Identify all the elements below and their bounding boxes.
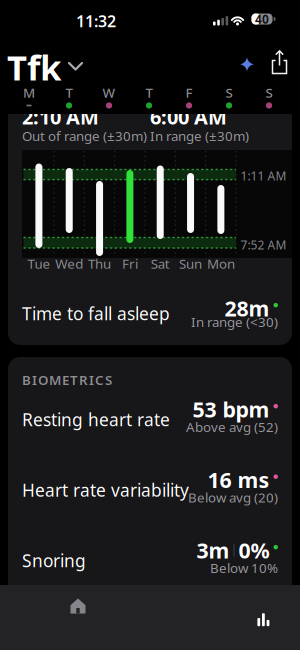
button[interactable]: Tfk	[7, 44, 84, 90]
staticText: Below 10%	[210, 559, 278, 577]
staticText: 6:00 AM	[150, 103, 227, 130]
staticText: 28m	[224, 294, 269, 322]
button[interactable]: Share	[270, 48, 289, 75]
staticText: 40	[255, 11, 269, 27]
staticText: S	[265, 84, 272, 101]
button[interactable]: Resting heart rate	[8, 393, 292, 438]
staticText: 16 ms	[207, 465, 269, 494]
staticText: BIOMETRICS	[22, 371, 112, 389]
staticText: M	[23, 84, 35, 101]
button[interactable]: Stats	[185, 584, 265, 632]
staticText: Below avg (20)	[188, 488, 278, 506]
staticText: Heart rate variability	[22, 478, 189, 501]
staticText: 11:32	[76, 10, 116, 32]
button[interactable]: F	[169, 83, 209, 113]
button[interactable]: Heart rate variability	[8, 463, 292, 508]
staticText: Wed	[55, 255, 83, 272]
button[interactable]: Insights	[238, 55, 256, 74]
staticText: Thu	[88, 255, 111, 272]
staticText: Tue	[27, 255, 50, 272]
staticText: Time to fall asleep	[22, 302, 170, 325]
staticText: 7:52 AM	[240, 237, 286, 253]
staticText: Snoring	[22, 549, 86, 572]
staticText: F	[185, 84, 192, 101]
staticText: T	[145, 84, 152, 101]
staticText: In range (±30m)	[150, 127, 249, 145]
staticText: 2:10 AM	[22, 103, 99, 130]
staticText: Resting heart rate	[22, 408, 170, 431]
button[interactable]: Snoring	[8, 534, 292, 579]
button[interactable]: Home	[38, 584, 118, 632]
staticText: Mon	[207, 255, 235, 272]
staticText: Tfk	[7, 44, 61, 90]
staticText: Sat	[151, 255, 170, 272]
staticText: Above avg (52)	[186, 418, 278, 436]
staticText: W	[102, 84, 115, 101]
staticText: Fri	[122, 255, 138, 272]
staticText: In range (<30)	[191, 313, 278, 331]
staticText: T	[65, 84, 72, 101]
staticText: 0%	[238, 536, 269, 564]
staticText: 53 bpm	[192, 395, 269, 423]
staticText: S	[225, 84, 232, 101]
button[interactable]: M	[9, 83, 49, 113]
button[interactable]: T	[129, 83, 169, 113]
button[interactable]: W	[89, 83, 129, 113]
button[interactable]: S	[209, 83, 249, 113]
staticText: 1:11 AM	[240, 168, 286, 184]
button[interactable]: T	[49, 83, 89, 113]
button[interactable]: S	[249, 83, 289, 113]
staticText: 3m	[196, 536, 229, 564]
button[interactable]: Time to fall asleep	[8, 285, 292, 337]
staticText: Out of range (±30m)	[22, 127, 147, 145]
staticText: Sun	[179, 255, 202, 272]
